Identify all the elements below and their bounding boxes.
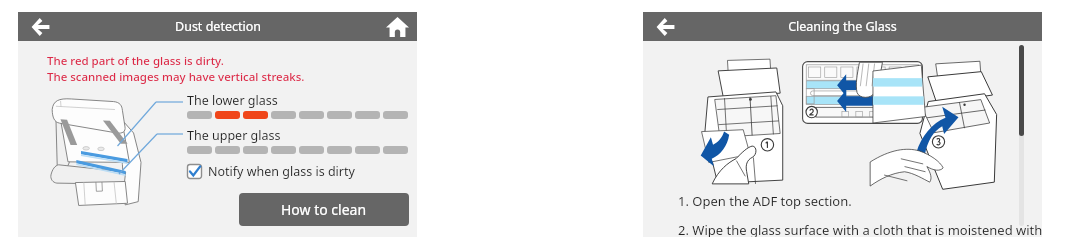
staticText: 1. Open the ADF top section.: [678, 192, 852, 210]
staticText: How to clean: [281, 200, 367, 219]
staticText: The lower glass: [187, 92, 278, 109]
staticText: The scanned images may have vertical str…: [47, 69, 305, 85]
staticText: Cleaning the Glass: [788, 18, 897, 35]
staticText: Dust detection: [175, 18, 261, 35]
button[interactable]: Back: [18, 12, 63, 41]
button[interactable]: How to clean: [239, 193, 409, 226]
button[interactable]: Home: [377, 12, 417, 41]
staticText: The upper glass: [187, 127, 281, 144]
staticText: 2. Wipe the glass surface with a cloth t…: [678, 221, 1042, 237]
button[interactable]: Notify when glass is dirty: [187, 163, 355, 180]
staticText: The red part of the glass is dirty.: [47, 53, 224, 69]
staticText: Notify when glass is dirty: [208, 163, 355, 180]
button[interactable]: Back: [643, 12, 688, 41]
